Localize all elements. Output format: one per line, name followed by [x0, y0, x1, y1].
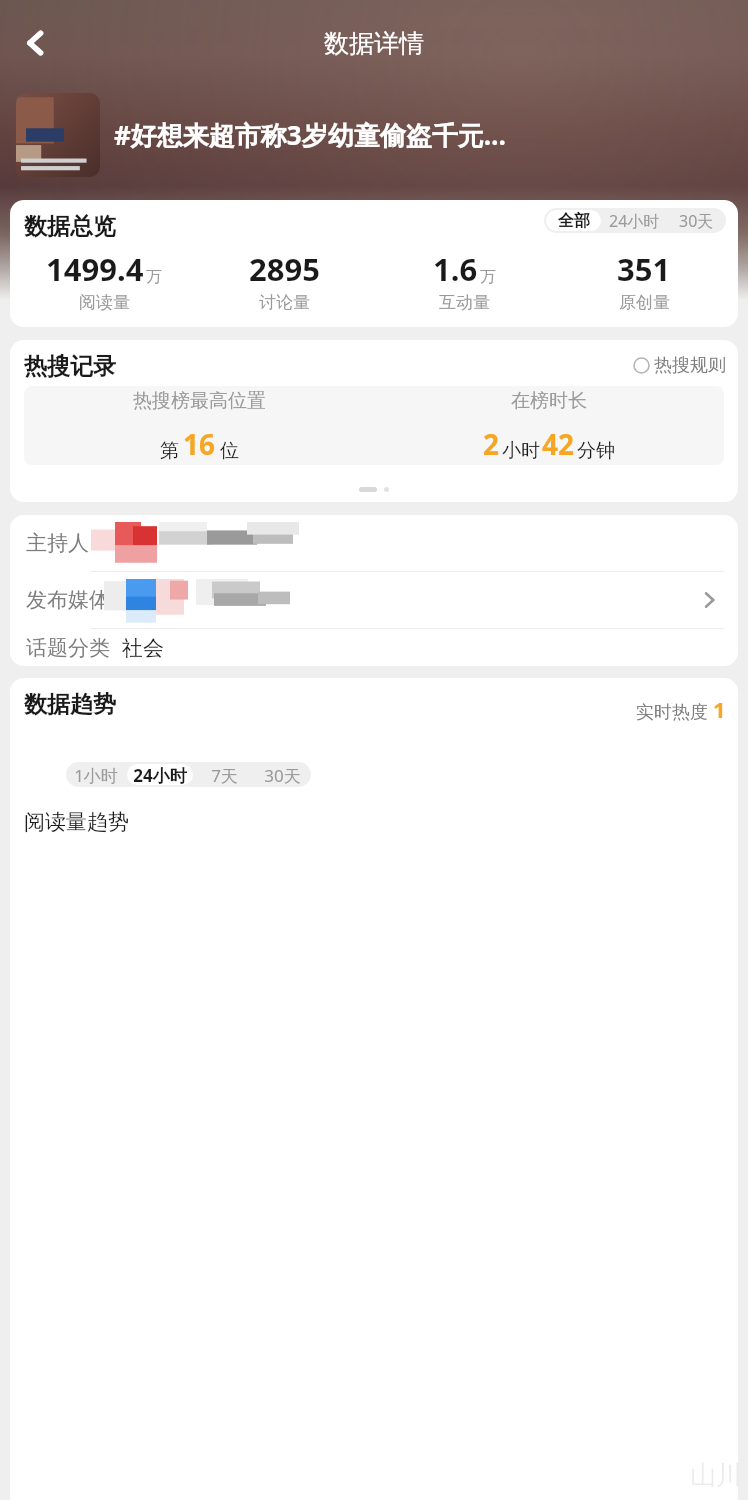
staticText: 30天: [264, 764, 301, 785]
staticText: 24小时: [609, 210, 660, 231]
staticText: 发布媒体: [26, 587, 110, 613]
button[interactable]: 30天: [255, 764, 309, 785]
staticText: 7天: [211, 764, 238, 785]
staticText: 数据总览: [24, 212, 116, 241]
staticText: 热搜记录: [24, 352, 116, 381]
staticText: 16: [183, 425, 216, 463]
staticText: 1499.4: [46, 248, 144, 290]
staticText: 热搜规则: [654, 354, 726, 377]
button[interactable]: 24小时: [605, 210, 664, 231]
button[interactable]: 发布媒体: [10, 572, 738, 628]
staticText: 30天: [679, 210, 714, 231]
button[interactable]: 全部: [546, 210, 601, 231]
button[interactable]: 1499.4: [14, 248, 194, 313]
button[interactable]: 2895: [194, 248, 374, 313]
staticText: 全部: [558, 211, 590, 231]
button[interactable]: Topic thumbnail: [16, 93, 100, 177]
button[interactable]: 24小时: [127, 764, 193, 785]
staticText: 24小时: [133, 764, 187, 785]
staticText: 数据趋势: [24, 690, 116, 719]
staticText: 2: [483, 425, 500, 463]
staticText: 在榜时长: [511, 389, 587, 413]
staticText: 实时热度: [636, 701, 708, 724]
staticText: 1小时: [74, 764, 118, 785]
staticText: 话题分类: [26, 635, 110, 661]
staticText: 万: [146, 267, 162, 287]
staticText: 山川: [690, 1459, 742, 1492]
staticText: 分钟: [577, 439, 615, 463]
staticText: #好想来超市称3岁幼童偷盗千元…: [114, 117, 506, 153]
staticText: 数据详情: [324, 28, 424, 59]
button[interactable]: 7天: [197, 764, 251, 785]
staticText: 351: [617, 248, 671, 290]
staticText: 社会: [122, 635, 164, 661]
staticText: 主持人: [26, 530, 89, 556]
staticText: 万: [480, 267, 496, 287]
button[interactable]: 主持人: [10, 515, 738, 571]
button[interactable]: Back: [8, 15, 64, 71]
staticText: 小时: [502, 439, 540, 463]
staticText: 第: [160, 439, 179, 463]
staticText: 原创量: [619, 292, 670, 313]
staticText: 阅读量: [79, 292, 130, 313]
button[interactable]: 热搜规则: [633, 354, 726, 377]
staticText: 1: [713, 694, 726, 724]
staticText: 1.6: [433, 248, 478, 290]
staticText: 互动量: [439, 292, 490, 313]
button[interactable]: 1小时: [68, 764, 123, 785]
button[interactable]: 1.6: [374, 248, 554, 313]
button[interactable]: 30天: [668, 210, 724, 231]
staticText: 阅读量趋势: [24, 809, 129, 835]
button[interactable]: 话题分类: [10, 629, 738, 666]
staticText: 位: [220, 439, 239, 463]
staticText: 2895: [249, 248, 320, 290]
staticText: 42: [542, 425, 575, 463]
button[interactable]: 351: [554, 248, 734, 313]
button[interactable]: 实时热度: [636, 694, 726, 724]
staticText: 讨论量: [259, 292, 310, 313]
staticText: 热搜榜最高位置: [133, 389, 266, 413]
